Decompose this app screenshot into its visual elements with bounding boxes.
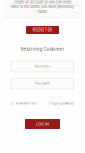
- staticText: track of the orders you have previously: [11, 4, 74, 9]
- staticText: Returning Customer: [20, 46, 64, 52]
- staticText: Remember me?: [15, 102, 36, 105]
- button[interactable]: Remember me?: [11, 102, 36, 105]
- button[interactable]: Forgot password?: [49, 102, 74, 105]
- staticText: Password: [35, 82, 50, 85]
- staticText: create an account so you can keep: [14, 0, 71, 4]
- staticText: REGISTER: [32, 27, 52, 32]
- staticText: Forgot password?: [49, 102, 74, 105]
- staticText: Username: [34, 65, 50, 68]
- button[interactable]: LOG IN: [25, 119, 60, 129]
- button[interactable]: REGISTER: [26, 26, 59, 34]
- staticText: LOG IN: [36, 122, 49, 126]
- staticText: made.: [37, 9, 47, 14]
